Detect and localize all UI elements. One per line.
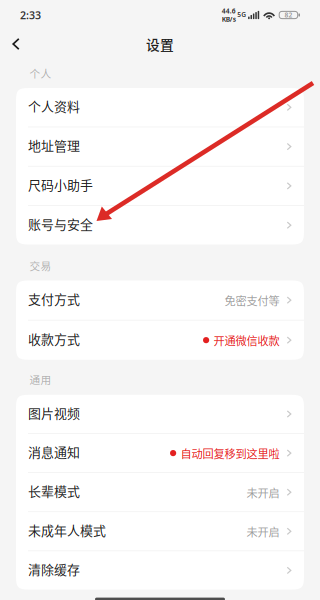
staticText: KB/s — [222, 15, 236, 24]
button[interactable]: 消息通知 — [16, 434, 304, 472]
staticText: 账号与安全 — [28, 214, 93, 233]
button[interactable]: 账号与安全 — [16, 206, 304, 244]
button[interactable]: 图片视频 — [16, 395, 304, 433]
staticText: 通用 — [29, 372, 51, 387]
staticText: 44.6 — [222, 6, 236, 15]
staticText: 2:33 — [20, 8, 41, 22]
staticText: 清除缓存 — [28, 559, 80, 578]
staticText: 免密支付等 — [225, 292, 280, 308]
button[interactable]: 支付方式 — [16, 280, 304, 320]
staticText: 图片视频 — [28, 403, 80, 422]
staticText: 尺码小助手 — [28, 175, 93, 194]
staticText: 开通微信收款 — [214, 332, 280, 348]
staticText: 82 — [284, 11, 292, 19]
button[interactable]: 地址管理 — [16, 127, 304, 166]
staticText: 个人 — [29, 65, 51, 81]
staticText: 交易 — [29, 258, 51, 273]
staticText: 地址管理 — [28, 136, 80, 154]
staticText: 支付方式 — [28, 289, 80, 308]
staticText: 未开启 — [247, 523, 280, 540]
staticText: 5G — [237, 10, 246, 19]
button[interactable]: 未成年人模式 — [16, 512, 304, 550]
button[interactable]: 个人资料 — [16, 88, 304, 127]
button[interactable]: 尺码小助手 — [16, 167, 304, 205]
staticText: 个人资料 — [28, 96, 80, 115]
staticText: 收款方式 — [28, 329, 80, 348]
button[interactable]: 返回 — [0, 28, 32, 60]
button[interactable]: 清除缓存 — [16, 551, 304, 590]
staticText: 设置 — [146, 34, 174, 54]
button[interactable]: 收款方式 — [16, 320, 304, 360]
staticText: 未成年人模式 — [28, 520, 106, 539]
button[interactable]: 长辈模式 — [16, 473, 304, 511]
staticText: 长辈模式 — [28, 481, 80, 500]
staticText: 未开启 — [247, 484, 280, 501]
staticText: 消息通知 — [28, 442, 80, 461]
staticText: 自动回复移到这里啦 — [181, 445, 280, 461]
